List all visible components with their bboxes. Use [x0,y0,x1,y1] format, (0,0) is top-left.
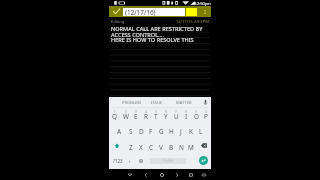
button[interactable]: Recent apps [186,169,196,180]
button[interactable]: C [146,138,156,153]
staticText: I [185,112,188,121]
staticText: P [204,112,208,121]
button[interactable]: English [150,158,186,164]
button[interactable]: V [156,138,166,153]
staticText: 5 [155,110,157,114]
button[interactable]: Shift [109,138,125,153]
button[interactable]: Switch keyboard [199,169,209,180]
staticText: Editing [111,19,125,24]
staticText: E [134,112,138,121]
staticText: English [163,159,174,163]
staticText: G [159,127,164,136]
button[interactable]: L [196,123,206,138]
button[interactable]: PROBLEM [120,97,144,108]
staticText: 2:50pm [197,1,211,6]
staticText: K [189,127,193,136]
staticText: V [159,143,163,152]
staticText: Q [112,112,117,121]
button[interactable]: ?123 [111,153,124,168]
staticText: J [180,127,182,136]
staticText: MATTER [176,100,192,106]
staticText: ACCESS CONTROL.... [111,31,165,39]
button[interactable]: 6 [161,108,171,123]
button[interactable]: Hide keyboard [125,169,135,180]
button[interactable]: Note colour [185,6,198,17]
staticText: (12/17/16) [125,8,156,16]
button[interactable]: MATTER [172,97,196,108]
button[interactable]: Forward [172,169,182,180]
staticText: HERE IS HOW TO RESOLVE THIS [111,36,194,44]
button[interactable]: 4 [141,108,151,123]
staticText: L [199,127,203,136]
staticText: 0 [205,110,207,114]
button[interactable]: X [136,138,146,153]
staticText: F [149,127,153,136]
staticText: NORMAL CALL ARE RESTRICTED BY [111,25,203,33]
staticText: U [174,112,179,121]
staticText: Y [164,112,168,121]
button[interactable]: 9 [191,108,201,123]
button[interactable]: 1 [109,108,120,123]
staticText: O [194,112,199,121]
staticText: X [139,143,143,152]
button[interactable]: Emoji [135,153,146,168]
staticText: N [179,143,184,152]
staticText: 7 [175,110,177,114]
button[interactable]: S [125,123,136,138]
button[interactable]: K [186,123,196,138]
button[interactable]: A [114,123,125,138]
button[interactable]: 0 [201,108,211,123]
button[interactable]: , [124,153,135,168]
button[interactable]: Voice input [199,97,211,108]
staticText: PROBLEM [122,100,142,106]
button[interactable]: Z [125,138,136,153]
button[interactable]: 5 [151,108,161,123]
staticText: ISSUE [151,100,163,106]
button[interactable]: M [186,138,196,153]
button[interactable]: 8 [181,108,191,123]
button[interactable]: 7 [171,108,181,123]
staticText: S [129,127,133,136]
staticText: 46 [192,1,197,6]
button[interactable]: More options [198,6,211,17]
button[interactable]: J [176,123,186,138]
staticText: 8 [185,110,187,114]
staticText: , [129,156,131,164]
button[interactable]: (12/17/16) [123,8,185,16]
button[interactable]: 2 [120,108,131,123]
button[interactable]: 3 [131,108,141,123]
staticText: ?123 [113,158,123,164]
staticText: 1 [114,110,116,114]
button[interactable]: Home [157,169,167,180]
button[interactable]: Back [141,169,151,180]
staticText: D [139,127,144,136]
staticText: R [144,112,148,121]
button[interactable]: Enter [196,153,210,168]
staticText: 4 [145,110,147,114]
staticText: M [188,143,194,152]
button[interactable]: G [156,123,166,138]
staticText: 12/17/16 2:50 PM [176,19,209,24]
button[interactable]: NORMAL CALL ARE RESTRICTED BY [109,25,211,180]
staticText: T [154,112,158,121]
button[interactable]: N [176,138,186,153]
staticText: Z [129,143,133,152]
staticText: 3 [135,110,137,114]
staticText: C [149,143,154,152]
staticText: B [169,143,174,152]
button[interactable]: Backspace [196,138,211,153]
button[interactable]: D [136,123,146,138]
staticText: 2 [125,110,127,114]
button[interactable]: ISSUE [145,97,169,108]
button[interactable]: B [166,138,176,153]
staticText: 9 [195,110,197,114]
staticText: 6 [165,110,167,114]
staticText: A [117,127,122,136]
staticText: H [169,127,174,136]
staticText: W [123,112,129,121]
button[interactable]: Save note [109,6,123,17]
button[interactable]: H [166,123,176,138]
button[interactable]: F [146,123,156,138]
